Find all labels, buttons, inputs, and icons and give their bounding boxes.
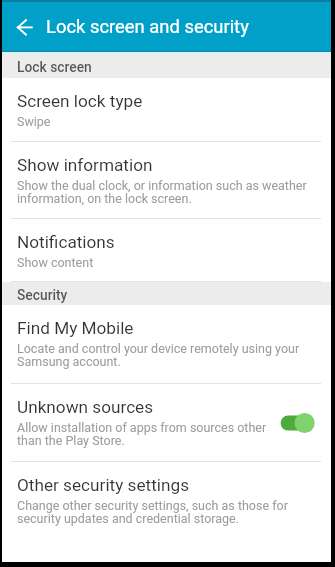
button[interactable]: Back [2, 2, 46, 51]
staticText: Show the dual clock, or information such… [17, 179, 311, 205]
button[interactable]: Show information [2, 142, 331, 219]
button[interactable]: Unknown sources toggle [280, 410, 316, 436]
staticText: Unknown sources [17, 398, 154, 417]
staticText: Locate and control your device remotely … [17, 342, 311, 368]
button[interactable]: Notifications [2, 219, 331, 282]
staticText: Show content [17, 256, 94, 269]
staticText: Swipe [17, 115, 51, 128]
button[interactable]: Unknown sources [2, 384, 331, 462]
staticText: Other security settings [17, 476, 190, 495]
staticText: Find My Mobile [17, 319, 134, 338]
staticText: Lock screen [17, 59, 92, 75]
staticText: Change other security settings, such as … [17, 499, 311, 525]
staticText: Security [17, 287, 68, 303]
staticText: Show information [17, 156, 153, 175]
button[interactable]: Find My Mobile [2, 305, 331, 384]
staticText: Lock screen and security [46, 16, 249, 38]
staticText: Allow installation of apps from sources … [17, 421, 269, 447]
button[interactable]: Other security settings [2, 462, 331, 562]
button[interactable]: Screen lock type [2, 78, 331, 142]
staticText: Screen lock type [17, 92, 143, 111]
staticText: Notifications [17, 233, 115, 252]
